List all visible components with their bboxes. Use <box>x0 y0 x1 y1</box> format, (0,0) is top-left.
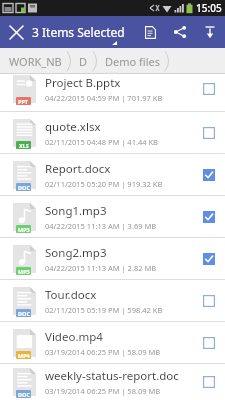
staticText: DOC <box>18 310 30 317</box>
staticText: Song1.mp3 <box>45 203 107 219</box>
button[interactable]: XLS <box>0 112 225 153</box>
staticText: 04/22/2015 04:59 PM | 701.97 KB <box>45 93 163 103</box>
staticText: Demo files <box>105 54 160 69</box>
button[interactable]: PPT <box>0 74 225 107</box>
button[interactable]: Close selection <box>0 16 32 48</box>
staticText: WORK_NB <box>9 54 62 69</box>
staticText: Project B.pptx <box>45 75 121 91</box>
staticText: Report.docx <box>45 161 111 177</box>
button[interactable]: WORK_NB <box>4 48 67 74</box>
button[interactable]: Selected <box>193 154 225 195</box>
button[interactable]: DOC <box>0 154 225 195</box>
staticText: Song2.mp3 <box>45 245 107 261</box>
staticText: 04/22/2015 11:13 AM | 3.69 MB <box>45 221 157 231</box>
staticText: 04/22/2015 11:13 AM | 2.82 MB <box>45 263 157 273</box>
staticText: 3 Items Selected <box>32 24 125 40</box>
staticText: DOC <box>18 184 30 191</box>
staticText: XLS <box>19 142 29 149</box>
staticText: quote.xlsx <box>45 119 101 135</box>
staticText: MP3 <box>18 268 30 275</box>
button[interactable]: 3 Items Selected <box>32 16 135 48</box>
staticText: Tour.docx <box>45 287 97 303</box>
staticText: DOC <box>18 391 30 398</box>
staticText: 15:05 <box>196 1 222 15</box>
staticText: D <box>79 54 88 69</box>
staticText: 03/19/2014 06:25 PM | 58.09 MB <box>45 386 161 396</box>
staticText: 03/19/2014 06:25 PM | 58.09 MB <box>45 347 161 357</box>
button[interactable]: Demo files <box>100 48 165 74</box>
staticText: PPT <box>18 98 29 105</box>
staticText: 02/11/2015 05:20 PM | 919.32 KB <box>45 179 163 189</box>
staticText: weekly-status-report.doc <box>45 368 179 384</box>
staticText: MP4 <box>18 352 30 359</box>
button[interactable]: DOC <box>0 364 225 400</box>
staticText: Video.mp4 <box>45 329 103 345</box>
button[interactable]: Not selected <box>193 322 225 363</box>
button[interactable]: MP4 <box>0 322 225 363</box>
button[interactable]: DOC <box>0 280 225 321</box>
button[interactable]: Not selected <box>193 112 225 153</box>
button[interactable]: Details <box>135 16 165 48</box>
button[interactable]: Download <box>195 16 225 48</box>
button[interactable]: D <box>74 48 93 74</box>
button[interactable]: Not selected <box>193 74 225 107</box>
button[interactable]: Not selected <box>193 280 225 321</box>
staticText: MP3 <box>18 226 30 233</box>
button[interactable]: Selected <box>193 238 225 279</box>
button[interactable]: Not selected <box>193 364 225 400</box>
button[interactable]: MP3 <box>0 196 225 237</box>
button[interactable]: MP3 <box>0 238 225 279</box>
staticText: 02/11/2015 04:48 PM | 41.44 KB <box>45 137 158 147</box>
button[interactable]: Share <box>165 16 195 48</box>
button[interactable]: Selected <box>193 196 225 237</box>
staticText: 02/11/2015 05:19 PM | 598.42 KB <box>45 305 163 315</box>
